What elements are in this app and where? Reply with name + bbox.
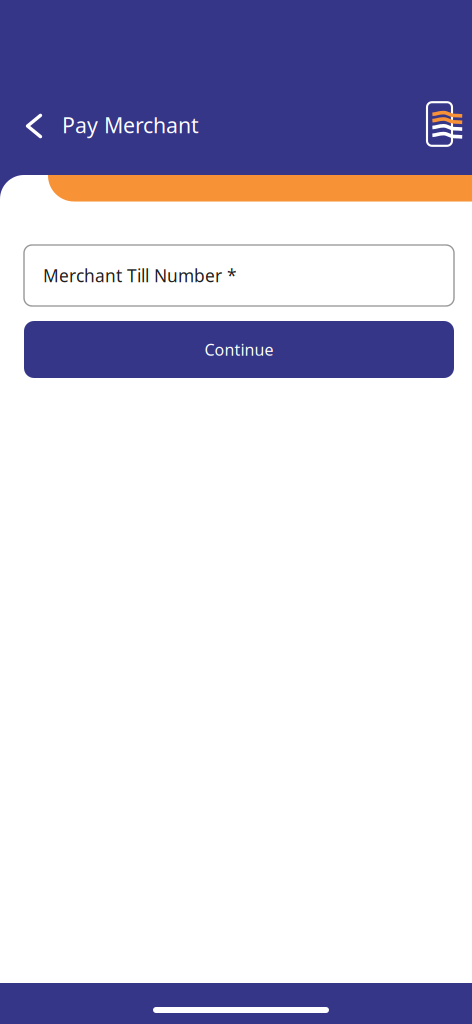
staticText: Continue xyxy=(204,339,273,360)
staticText: Pay Merchant xyxy=(62,111,199,139)
button[interactable]: Continue xyxy=(24,321,454,378)
staticText: Merchant Till Number * xyxy=(43,264,237,287)
button[interactable]: Merchant Till Number * xyxy=(24,245,454,306)
button[interactable]: Statements xyxy=(418,98,466,150)
button[interactable]: Back xyxy=(14,104,54,148)
